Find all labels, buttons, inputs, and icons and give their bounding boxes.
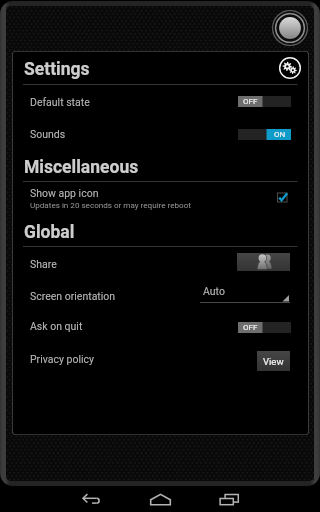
button[interactable]: Show app icon [12,185,309,215]
button[interactable]: Advanced settings [278,56,302,80]
staticText: Settings [24,59,90,80]
staticText: OFF [243,97,258,106]
staticText: Miscellaneous [24,157,139,178]
button[interactable]: Recent apps [217,487,242,512]
staticText: Share [30,258,57,270]
button[interactable]: Show app icon checkbox [277,192,289,204]
button[interactable]: Default state [12,89,309,117]
button[interactable]: Ask on quit [12,314,309,342]
button[interactable]: Privacy policy [12,347,309,375]
button[interactable]: Back [79,487,104,512]
button[interactable]: Screen orientation [12,283,309,311]
staticText: Show app icon [30,187,99,199]
staticText: Screen orientation [30,290,116,302]
button[interactable]: Toggle off [238,322,291,333]
staticText: ON [274,130,286,139]
staticText: Privacy policy [30,353,94,365]
staticText: Default state [30,96,90,108]
button[interactable]: Home [148,487,173,512]
staticText: Global [24,222,75,243]
button[interactable]: Toggle off [238,96,291,107]
staticText: Sounds [30,128,66,140]
staticText: Updates in 20 seconds or may require reb… [30,200,191,209]
staticText: View [263,356,284,367]
staticText: Ask on quit [30,320,83,332]
staticText: Auto [203,285,225,297]
button[interactable]: Auto [200,284,290,306]
button[interactable]: View [257,351,290,371]
button[interactable]: Share [237,253,290,271]
button[interactable]: Share [12,252,309,280]
button[interactable]: Power button [266,4,314,52]
button[interactable]: Toggle on [238,129,291,140]
button[interactable]: Sounds [12,121,309,149]
staticText: OFF [243,323,258,332]
